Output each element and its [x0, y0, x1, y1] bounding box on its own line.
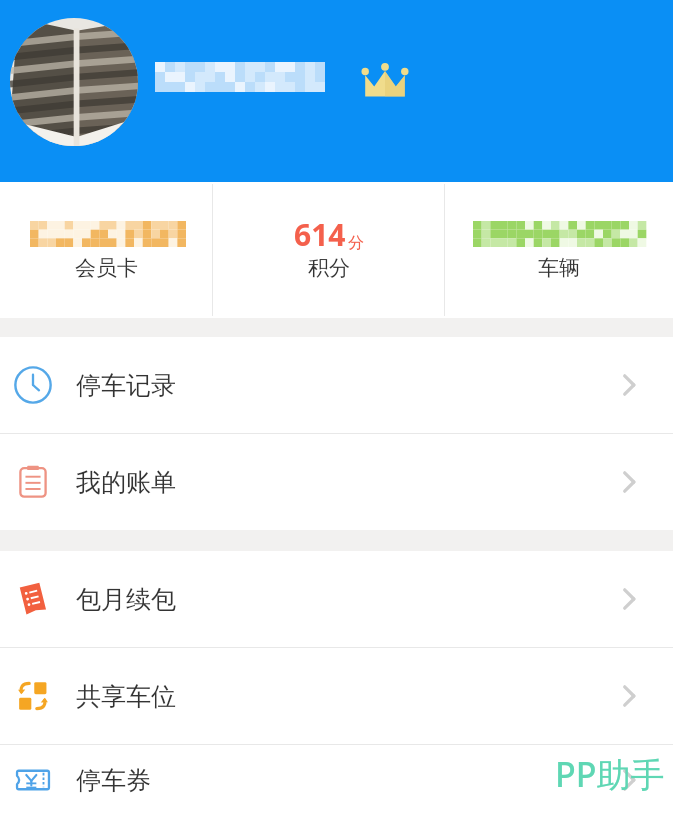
- button[interactable]: Profile photo: [10, 18, 138, 146]
- button[interactable]: User name: [155, 62, 323, 92]
- button[interactable]: 共享车位: [0, 648, 673, 744]
- staticText: 614: [294, 214, 346, 255]
- button[interactable]: 会员卡: [0, 182, 212, 318]
- staticText: 积分: [308, 255, 350, 281]
- button[interactable]: 包月续包: [0, 551, 673, 647]
- button[interactable]: 车辆: [445, 182, 673, 318]
- button[interactable]: 我的账单: [0, 434, 673, 530]
- staticText: PP助手: [555, 751, 665, 797]
- staticText: 停车券: [76, 765, 151, 796]
- staticText: 停车记录: [76, 370, 176, 401]
- button[interactable]: 614: [213, 182, 444, 318]
- staticText: 我的账单: [76, 467, 176, 498]
- staticText: 包月续包: [76, 584, 176, 615]
- staticText: 车辆: [538, 255, 580, 281]
- staticText: 共享车位: [76, 681, 176, 712]
- button[interactable]: 停车记录: [0, 337, 673, 433]
- button[interactable]: 停车券: [0, 745, 673, 815]
- staticText: 会员卡: [75, 255, 138, 281]
- staticText: 分: [348, 233, 364, 253]
- button[interactable]: VIP crown: [355, 58, 415, 110]
